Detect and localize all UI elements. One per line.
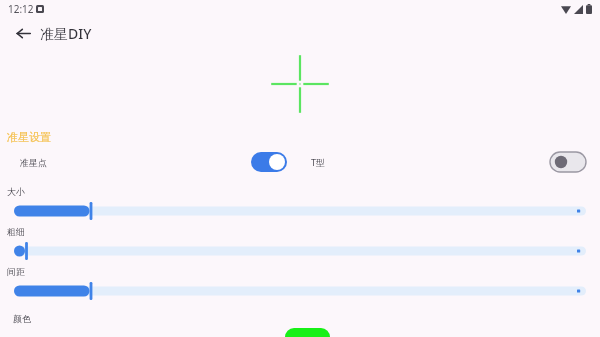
button[interactable]: 间距 <box>0 281 600 301</box>
staticText: 准星点 <box>20 157 47 168</box>
button[interactable]: Back <box>10 20 36 46</box>
staticText: T型 <box>311 156 326 168</box>
staticText: 间距 <box>7 266 25 277</box>
button[interactable]: 颜色选择 <box>285 328 330 337</box>
staticText: 颜色 <box>13 313 31 324</box>
button[interactable]: T型 开关 <box>550 152 586 172</box>
button[interactable]: 粗细 <box>0 241 600 261</box>
staticText: 12:12 <box>8 2 34 16</box>
staticText: 准星DIY <box>40 24 92 43</box>
button[interactable]: 大小 <box>0 201 600 221</box>
staticText: 大小 <box>7 186 25 197</box>
staticText: 准星设置 <box>7 130 51 144</box>
staticText: 粗细 <box>7 226 25 237</box>
button[interactable]: 准星点 开关 <box>251 152 287 172</box>
